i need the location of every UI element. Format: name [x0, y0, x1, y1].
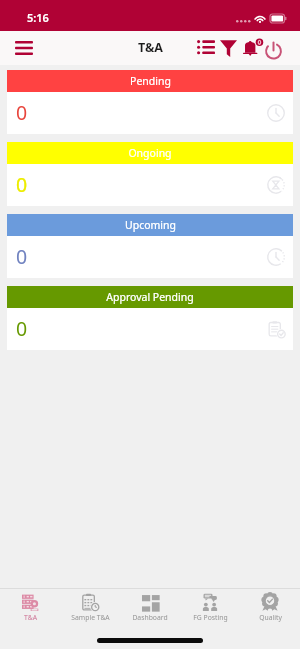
button[interactable]: Dashboard	[120, 589, 180, 622]
staticText: Dashboard	[132, 613, 168, 622]
staticText: Approval Pending	[106, 290, 194, 304]
staticText: Quality	[259, 613, 282, 622]
staticText: Sample T&A	[71, 613, 110, 622]
button[interactable]: Filter	[217, 31, 240, 65]
button[interactable]: Approval Pending	[7, 286, 293, 350]
button[interactable]: Upcoming	[7, 214, 293, 278]
button[interactable]: Menu	[0, 31, 47, 65]
staticText: Pending	[130, 74, 171, 88]
staticText: 0	[16, 171, 28, 198]
button[interactable]: Ongoing	[7, 142, 293, 206]
button[interactable]: List	[195, 31, 217, 65]
staticText: T&A	[24, 613, 37, 622]
staticText: FG Posting	[193, 613, 228, 622]
staticText: 0	[16, 99, 28, 126]
staticText: Upcoming	[125, 218, 176, 232]
button[interactable]: Power	[262, 31, 285, 65]
staticText: 5:16	[27, 10, 49, 25]
staticText: T&A	[138, 39, 163, 56]
staticText: 0	[16, 315, 28, 342]
staticText: 0	[16, 243, 28, 270]
button[interactable]: Quality	[240, 589, 300, 622]
button[interactable]: Notifications	[240, 31, 262, 65]
staticText: Ongoing	[128, 146, 172, 160]
button[interactable]: Pending	[7, 70, 293, 134]
button[interactable]: Sample T&A	[60, 589, 120, 622]
button[interactable]: T&A	[0, 589, 60, 622]
button[interactable]: FG Posting	[180, 589, 240, 622]
